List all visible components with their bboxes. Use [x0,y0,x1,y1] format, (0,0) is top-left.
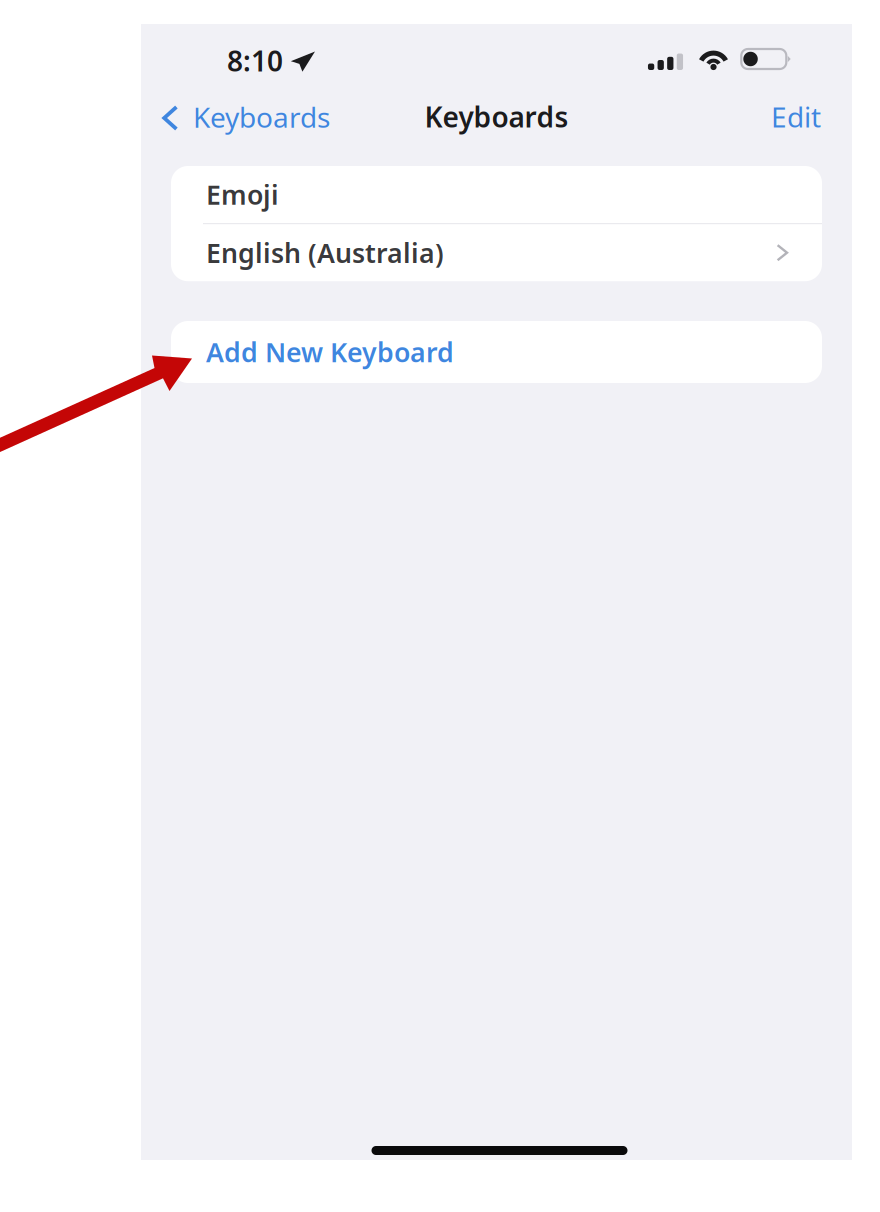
button[interactable]: English (Australia) [171,224,822,281]
staticText: Keyboards [193,98,330,136]
button[interactable]: Edit [757,87,835,146]
staticText: Edit [771,98,821,135]
button[interactable]: Emoji [171,166,822,223]
staticText: English (Australia) [206,235,444,270]
staticText: Keyboards [424,98,568,135]
button[interactable]: Back to Keyboards [141,94,341,140]
staticText: 8:10 [227,42,283,79]
staticText: Emoji [206,177,279,212]
staticText: Add New Keyboard [206,334,454,370]
button[interactable]: Add New Keyboard [171,321,822,383]
